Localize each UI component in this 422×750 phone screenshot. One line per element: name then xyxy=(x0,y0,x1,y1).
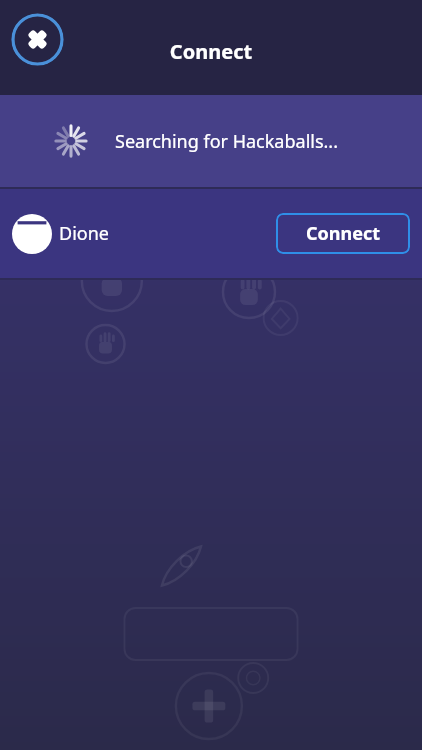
staticText: Connect xyxy=(0,38,422,65)
staticText: Searching for Hackaballs... xyxy=(115,129,339,154)
button[interactable]: Searching for Hackaballs... xyxy=(0,95,422,187)
staticText: Connect xyxy=(306,221,381,246)
staticText: Dione xyxy=(59,221,276,246)
button[interactable]: Connect xyxy=(276,213,410,254)
button[interactable]: Close xyxy=(11,13,64,66)
